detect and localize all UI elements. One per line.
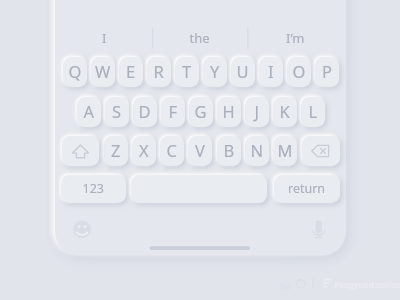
button[interactable] [259,57,283,87]
button[interactable]: Shift [62,136,99,166]
button[interactable]: Backspace [302,136,340,166]
button[interactable] [77,97,101,127]
button[interactable] [203,57,227,87]
button[interactable] [245,97,269,127]
button[interactable] [104,136,128,166]
button[interactable] [119,57,143,87]
button[interactable] [188,136,212,166]
button[interactable] [231,57,255,87]
button[interactable]: Emoji [68,216,96,243]
button[interactable] [217,97,241,127]
button[interactable] [274,175,340,203]
button[interactable] [132,136,156,166]
button[interactable] [61,175,126,203]
button[interactable] [133,97,157,127]
button[interactable] [57,25,152,51]
button[interactable] [175,57,199,87]
button[interactable] [63,57,87,87]
button[interactable] [315,57,339,87]
button[interactable] [189,97,213,127]
button[interactable]: Voice input [305,216,333,243]
button[interactable] [153,25,247,51]
button[interactable] [273,97,297,127]
button[interactable] [273,136,297,166]
button[interactable] [161,97,185,127]
button[interactable] [301,97,325,127]
button[interactable] [287,57,311,87]
button[interactable] [105,97,129,127]
button[interactable] [217,136,241,166]
button[interactable] [147,57,171,87]
button[interactable] [91,57,115,87]
button[interactable] [248,25,343,51]
button[interactable] [160,136,184,166]
button[interactable] [245,136,269,166]
